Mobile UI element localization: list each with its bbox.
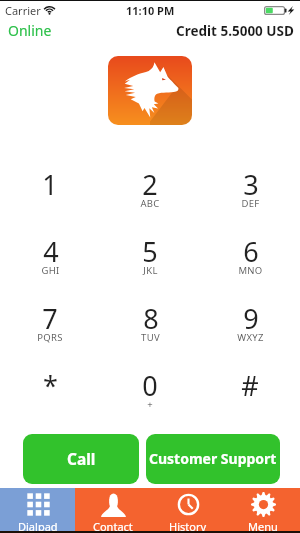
staticText: 8 bbox=[143, 300, 159, 337]
button[interactable]: Call bbox=[23, 434, 139, 484]
button[interactable] bbox=[108, 56, 192, 125]
button[interactable]: 9 bbox=[200, 300, 300, 367]
staticText: 6 bbox=[243, 233, 259, 270]
staticText: WXYZ bbox=[237, 331, 264, 344]
staticText: Menu bbox=[248, 519, 278, 533]
staticText: PQRS bbox=[37, 331, 63, 344]
staticText: * bbox=[43, 367, 58, 404]
staticText: Carrier bbox=[5, 3, 41, 18]
button[interactable]: 0 bbox=[100, 367, 200, 434]
staticText: Customer Support bbox=[149, 449, 277, 468]
staticText: JKL bbox=[143, 264, 158, 277]
button[interactable]: 5 bbox=[100, 233, 200, 300]
staticText: 0 bbox=[142, 367, 158, 404]
staticText: # bbox=[241, 367, 259, 404]
button[interactable]: Dialpad bbox=[0, 488, 75, 533]
staticText: GHI bbox=[41, 264, 60, 277]
staticText: 3 bbox=[243, 166, 259, 203]
button[interactable]: History bbox=[150, 488, 225, 533]
button[interactable]: * bbox=[0, 367, 100, 434]
button[interactable]: 8 bbox=[100, 300, 200, 367]
button[interactable]: # bbox=[200, 367, 300, 434]
staticText: 4 bbox=[43, 233, 59, 270]
staticText: Call bbox=[67, 448, 96, 469]
button[interactable]: Customer Support bbox=[146, 434, 280, 484]
staticText: ABC bbox=[140, 197, 160, 210]
staticText: 5 bbox=[142, 233, 158, 270]
staticText: 9 bbox=[243, 300, 259, 337]
staticText: 2 bbox=[142, 166, 158, 203]
button[interactable]: Menu bbox=[225, 488, 300, 533]
staticText: Contact bbox=[93, 519, 133, 533]
staticText: 1 bbox=[42, 166, 58, 203]
staticText: MNO bbox=[238, 264, 263, 277]
button[interactable]: 4 bbox=[0, 233, 100, 300]
staticText: 11:10 PM bbox=[126, 3, 175, 18]
staticText: + bbox=[147, 398, 153, 411]
staticText: 7 bbox=[42, 300, 58, 337]
staticText: TUV bbox=[141, 331, 160, 344]
button[interactable]: 6 bbox=[200, 233, 300, 300]
staticText: Online bbox=[8, 21, 52, 40]
button[interactable]: 7 bbox=[0, 300, 100, 367]
button[interactable]: 1 bbox=[0, 166, 100, 233]
staticText: History bbox=[169, 519, 207, 533]
button[interactable]: Contact bbox=[75, 488, 150, 533]
staticText: DEF bbox=[241, 197, 260, 210]
staticText: Credit 5.5000 USD bbox=[176, 22, 294, 40]
staticText: Dialpad bbox=[18, 519, 58, 533]
button[interactable]: 2 bbox=[100, 166, 200, 233]
button[interactable]: 3 bbox=[200, 166, 300, 233]
